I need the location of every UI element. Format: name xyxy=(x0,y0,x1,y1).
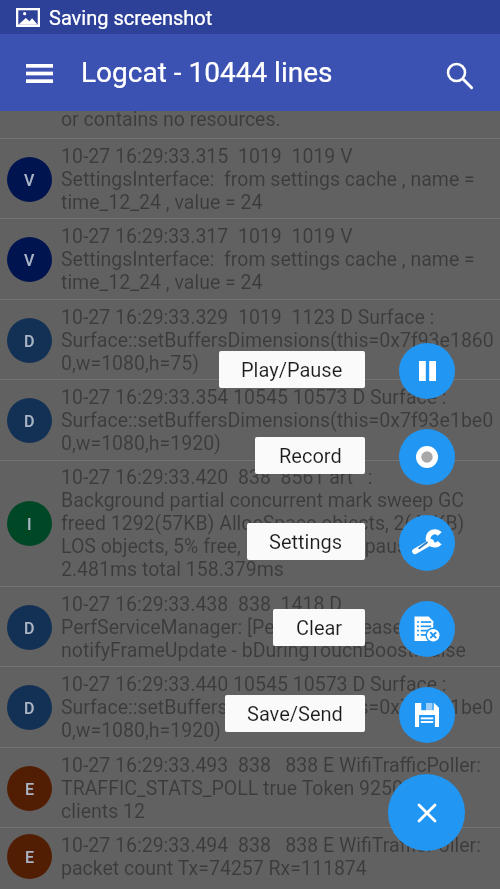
staticText: D xyxy=(24,412,35,431)
button[interactable]: Play/Pause xyxy=(219,351,365,388)
button[interactable]: D xyxy=(0,300,500,380)
button[interactable]: Save/Send xyxy=(399,687,455,743)
staticText: D xyxy=(24,619,35,638)
button[interactable]: Clear xyxy=(399,601,455,657)
staticText: or contains no resources. xyxy=(61,108,281,131)
staticText: 10-27 16:29:33.438 838 1418 D PerfServic… xyxy=(61,593,466,662)
button[interactable]: Settings xyxy=(399,515,455,571)
staticText: D xyxy=(24,699,35,718)
button[interactable]: Search xyxy=(433,47,485,99)
staticText: Clear xyxy=(296,616,343,639)
staticText: Record xyxy=(279,444,342,467)
button[interactable]: E xyxy=(0,828,500,885)
button[interactable]: E xyxy=(0,748,500,828)
button[interactable]: I xyxy=(0,461,500,586)
button[interactable]: V xyxy=(0,139,500,219)
staticText: Settings xyxy=(269,530,343,553)
button[interactable]: Close menu xyxy=(388,774,465,851)
staticText: Save/Send xyxy=(247,702,343,725)
staticText: 10-27 16:29:33.315 1019 1019 V SettingsI… xyxy=(61,145,475,214)
staticText: E xyxy=(25,780,35,799)
staticText: 10-27 16:29:33.494 838 838 E WifiTraffic… xyxy=(61,834,481,880)
staticText: Logcat - 10444 lines xyxy=(81,56,333,89)
button[interactable]: Play/Pause xyxy=(399,343,455,399)
staticText: D xyxy=(24,332,35,351)
button[interactable]: Record xyxy=(399,429,455,485)
staticText: V xyxy=(24,251,35,270)
button[interactable]: Settings xyxy=(247,523,365,560)
button[interactable]: Clear xyxy=(273,609,365,646)
staticText: V xyxy=(24,171,35,190)
button[interactable]: Save/Send xyxy=(225,695,365,732)
button[interactable]: D xyxy=(0,587,500,667)
staticText: E xyxy=(25,848,35,867)
button[interactable]: V xyxy=(0,219,500,299)
staticText: Play/Pause xyxy=(241,358,343,381)
button[interactable]: Record xyxy=(255,437,365,474)
staticText: 10-27 16:29:33.440 10545 10573 D Surface… xyxy=(61,673,494,742)
staticText: 10-27 16:29:33.329 1019 1123 D Surface :… xyxy=(61,306,494,375)
staticText: 10-27 16:29:33.354 10545 10573 D Surface… xyxy=(61,386,494,455)
staticText: 10-27 16:29:33.493 838 838 E WifiTraffic… xyxy=(61,754,481,823)
staticText: 10-27 16:29:33.317 1019 1019 V SettingsI… xyxy=(61,225,475,294)
button[interactable]: D xyxy=(0,667,500,747)
button[interactable]: D xyxy=(0,380,500,460)
button[interactable]: Open navigation drawer xyxy=(12,46,66,100)
staticText: 10-27 16:29:33.420 838 8561 art : Backgr… xyxy=(61,466,465,581)
staticText: Saving screenshot xyxy=(49,6,213,29)
staticText: I xyxy=(27,515,32,534)
